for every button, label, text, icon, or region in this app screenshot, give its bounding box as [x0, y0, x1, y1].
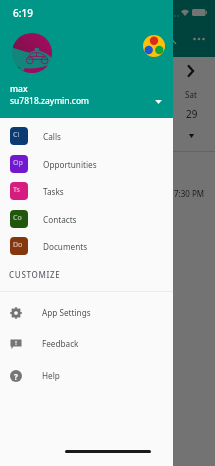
staticText: 29: [186, 107, 198, 121]
button[interactable]: App Settings: [0, 297, 173, 328]
button[interactable]: Search: [162, 30, 178, 46]
button[interactable]: Ts: [0, 177, 173, 205]
button[interactable]: Co: [0, 205, 173, 233]
staticText: App Settings: [42, 307, 91, 318]
button[interactable]: Cl: [0, 122, 173, 150]
staticText: Co: [13, 213, 22, 223]
staticText: Op: [13, 158, 23, 168]
staticText: Documents: [43, 241, 88, 252]
staticText: Sat: [185, 89, 197, 100]
staticText: max: [10, 83, 28, 95]
staticText: Tasks: [43, 186, 64, 197]
staticText: Contacts: [43, 214, 77, 225]
button[interactable]: Op: [0, 150, 173, 178]
button[interactable]: Do: [0, 232, 173, 260]
staticText: su7818.zaymin.com: [10, 95, 89, 107]
staticText: 7:30 PM: [174, 188, 205, 199]
staticText: Ts: [13, 185, 20, 195]
staticText: ?: [14, 371, 18, 382]
button[interactable]: Feedback: [0, 328, 173, 359]
button[interactable]: Switch account: [143, 35, 165, 57]
staticText: Calls: [43, 131, 61, 142]
button[interactable]: More options: [192, 32, 206, 46]
staticText: Do: [13, 240, 23, 250]
staticText: Help: [42, 370, 60, 381]
staticText: 6:19: [13, 6, 33, 20]
staticText: Cl: [13, 130, 20, 140]
button[interactable]: ?: [0, 360, 173, 391]
staticText: CUSTOMIZE: [9, 269, 61, 280]
staticText: Opportunities: [43, 159, 97, 170]
staticText: Feedback: [42, 338, 79, 349]
button[interactable]: Expand accounts: [150, 94, 166, 110]
